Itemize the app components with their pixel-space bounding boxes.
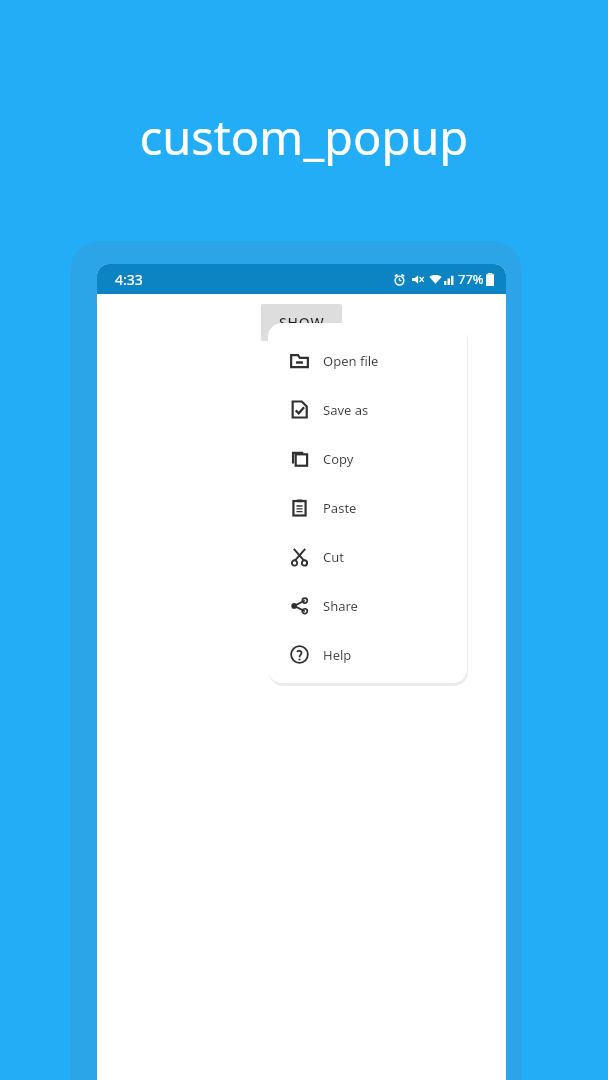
staticText: custom_popup bbox=[0, 105, 608, 169]
staticText: Help bbox=[323, 646, 352, 664]
button[interactable]: Share bbox=[268, 581, 467, 630]
button[interactable]: Cut bbox=[268, 532, 467, 581]
button[interactable]: Copy bbox=[268, 434, 467, 483]
staticText: Copy bbox=[323, 450, 354, 468]
staticText: Share bbox=[323, 597, 358, 615]
button[interactable]: Help bbox=[268, 630, 467, 679]
button[interactable]: SHOW bbox=[261, 304, 342, 341]
staticText: 4:33 bbox=[115, 270, 143, 289]
staticText: Open file bbox=[323, 352, 379, 370]
button[interactable]: Paste bbox=[268, 483, 467, 532]
staticText: Cut bbox=[323, 548, 344, 566]
staticText: SHOW bbox=[279, 313, 325, 332]
staticText: Paste bbox=[323, 499, 357, 517]
button[interactable]: Open file bbox=[268, 336, 467, 385]
button[interactable]: Save as bbox=[268, 385, 467, 434]
staticText: 77% bbox=[458, 270, 484, 288]
staticText: Save as bbox=[323, 401, 369, 419]
